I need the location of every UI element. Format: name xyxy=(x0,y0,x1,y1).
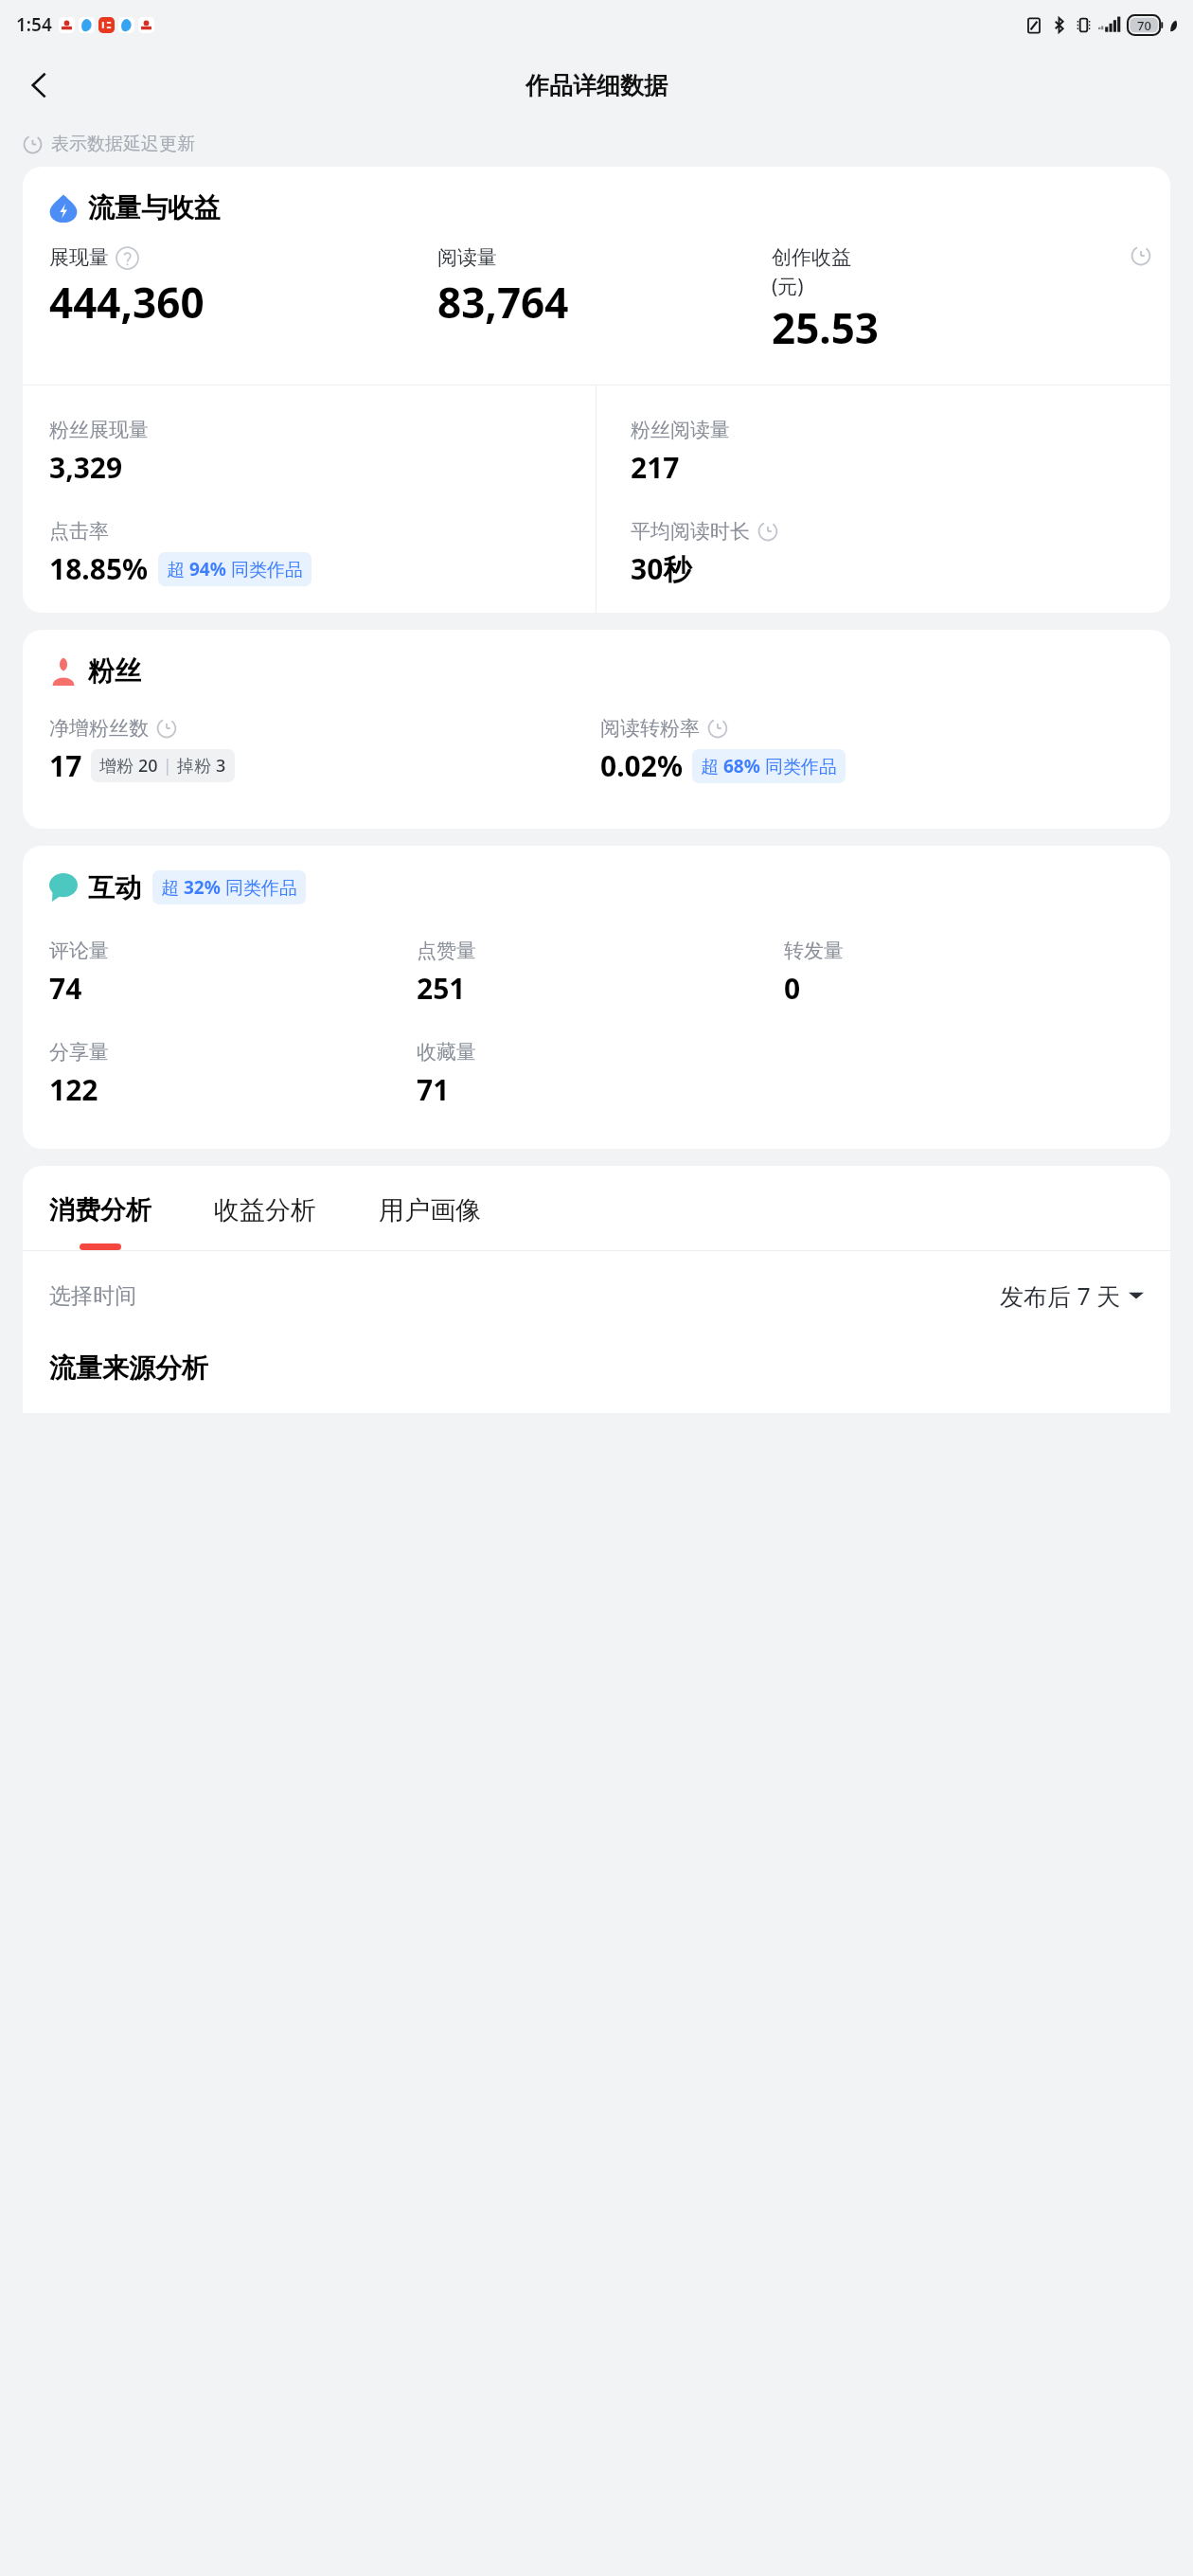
staticText: 同类作品 xyxy=(760,754,837,778)
staticText: 粉丝 xyxy=(88,654,141,688)
staticText: 表示数据延迟更新 xyxy=(51,133,195,155)
staticText: 122 xyxy=(49,1070,98,1109)
staticText: 1:54 xyxy=(16,12,52,37)
staticText: 超 xyxy=(701,754,723,778)
staticText: 71 xyxy=(417,1070,450,1109)
staticText: 超 xyxy=(161,875,184,900)
staticText: 点击率 xyxy=(49,519,109,544)
staticText: 0 xyxy=(784,969,801,1008)
staticText: 94% xyxy=(189,557,226,581)
staticText: 68% xyxy=(723,754,760,778)
staticText: 流量来源分析 xyxy=(49,1351,208,1385)
button[interactable]: 收益分析 xyxy=(214,1194,316,1250)
staticText: 流量与收益 xyxy=(88,191,221,224)
staticText: 粉丝阅读量 xyxy=(631,418,730,442)
button[interactable]: 粉丝 xyxy=(49,654,141,688)
staticText: 同类作品 xyxy=(221,875,297,900)
staticText: 转发量 xyxy=(784,939,844,963)
staticText: 83,764 xyxy=(437,274,569,331)
staticText: 18.85% xyxy=(49,549,149,588)
staticText: 掉粉 xyxy=(177,754,216,778)
staticText: 消费分析 xyxy=(49,1194,151,1226)
staticText: 20 xyxy=(138,754,158,778)
button[interactable]: 用户画像 xyxy=(379,1194,481,1250)
staticText: 0.02% xyxy=(600,746,683,785)
staticText: 粉丝展现量 xyxy=(49,418,149,442)
staticText: 发布后 7 天 xyxy=(1000,1279,1121,1312)
button[interactable]: Back xyxy=(13,59,66,112)
staticText: 444,360 xyxy=(49,274,205,331)
staticText: 增粉 xyxy=(99,754,138,778)
button[interactable]: 互动 xyxy=(49,870,306,904)
staticText: 30秒 xyxy=(631,549,692,588)
staticText: 74 xyxy=(49,969,82,1008)
staticText: 用户画像 xyxy=(379,1194,481,1226)
staticText: 25.53 xyxy=(772,299,880,356)
staticText: 互动 xyxy=(88,871,141,904)
staticText: 超 xyxy=(167,557,189,581)
staticText: 阅读转粉率 xyxy=(600,716,700,741)
staticText: 收益分析 xyxy=(214,1194,316,1226)
staticText: | xyxy=(158,754,177,778)
staticText: 32% xyxy=(184,875,221,900)
staticText: 阅读量 xyxy=(437,245,497,270)
staticText: 251 xyxy=(417,969,466,1008)
staticText: 70 xyxy=(1137,17,1151,34)
staticText: 平均阅读时长 xyxy=(631,519,750,544)
staticText: 展现量 xyxy=(49,245,109,270)
staticText: 作品详细数据 xyxy=(525,71,668,100)
staticText: 净增粉丝数 xyxy=(49,716,149,741)
staticText: 点赞量 xyxy=(417,939,476,963)
staticText: 创作收益 (元) xyxy=(772,245,851,299)
staticText: 217 xyxy=(631,448,680,487)
staticText: 3 xyxy=(216,754,226,778)
staticText: 评论量 xyxy=(49,939,109,963)
button[interactable]: 流量与收益 xyxy=(49,191,221,224)
button[interactable]: 选择时间 xyxy=(49,1279,1144,1312)
button[interactable]: 消费分析 xyxy=(49,1194,151,1250)
staticText: 17 xyxy=(49,746,82,785)
staticText: 选择时间 xyxy=(49,1282,136,1310)
staticText: 分享量 xyxy=(49,1040,109,1064)
staticText: 同类作品 xyxy=(226,557,303,581)
staticText: 3,329 xyxy=(49,448,123,487)
staticText: 收藏量 xyxy=(417,1040,476,1064)
